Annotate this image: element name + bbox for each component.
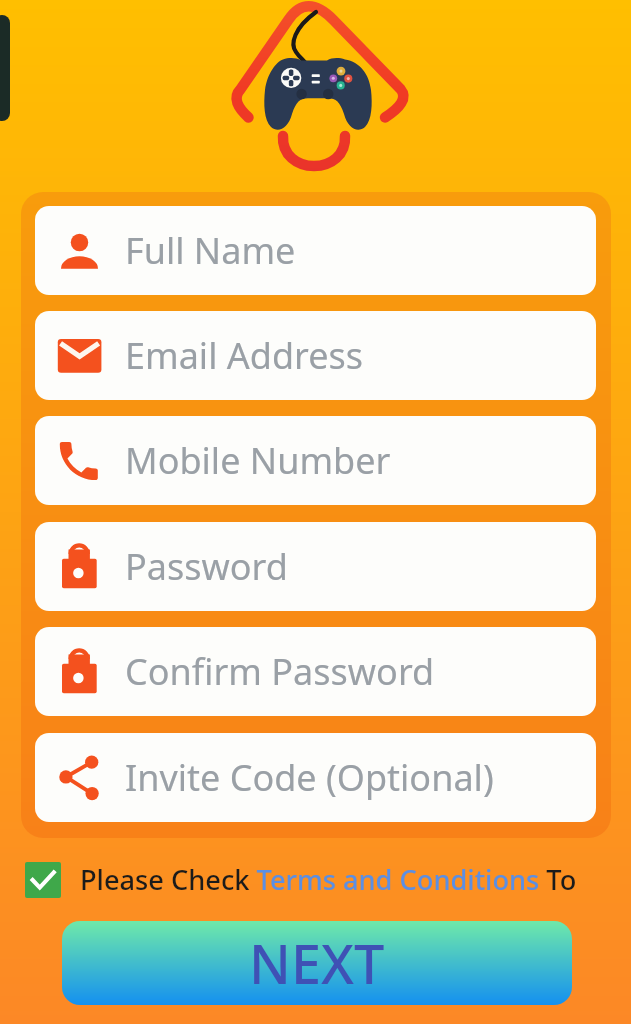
staticText: Confirm Password bbox=[125, 647, 435, 696]
staticText: NEXT bbox=[249, 926, 385, 1000]
button[interactable]: NEXT bbox=[62, 921, 572, 1005]
button[interactable]: Full Name bbox=[35, 206, 596, 295]
staticText: Password bbox=[125, 542, 288, 591]
button[interactable]: Invite Code (Optional) bbox=[35, 733, 596, 822]
staticText: Invite Code (Optional) bbox=[125, 753, 494, 802]
staticText: Full Name bbox=[125, 226, 296, 275]
staticText: Email Address bbox=[125, 331, 364, 380]
staticText: Please Check Terms and Conditions To Pro… bbox=[80, 861, 631, 898]
button[interactable]: Email Address bbox=[35, 311, 596, 400]
button[interactable]: Confirm Password bbox=[35, 627, 596, 716]
button[interactable]: Password bbox=[35, 522, 596, 611]
button[interactable]: Please Check Terms and Conditions To Pro… bbox=[0, 861, 631, 898]
staticText: Mobile Number bbox=[125, 436, 391, 485]
button[interactable]: Mobile Number bbox=[35, 416, 596, 505]
